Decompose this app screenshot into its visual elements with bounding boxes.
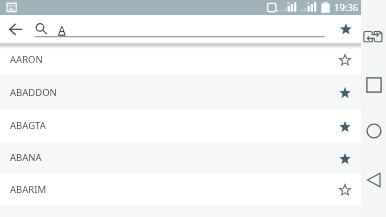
staticText: ABAGTA	[10, 119, 46, 132]
button[interactable]: Back	[361, 167, 386, 193]
button[interactable]: Home	[361, 118, 386, 144]
button[interactable]: ABAGTA	[0, 109, 361, 142]
button[interactable]: ABADDON	[0, 75, 361, 109]
button[interactable]: AARON	[0, 42, 361, 75]
button[interactable]: Favorites	[335, 18, 357, 40]
button[interactable]: ABARIM	[0, 173, 361, 205]
staticText: ABADDON	[10, 86, 57, 99]
staticText: AARON	[10, 53, 43, 66]
button[interactable]: ABANA	[0, 142, 361, 173]
staticText: A	[58, 22, 66, 38]
staticText: ABANA	[10, 151, 42, 164]
button[interactable]: Back	[4, 18, 26, 40]
staticText: ABARIM	[10, 183, 47, 196]
button[interactable]: Recents	[361, 72, 386, 98]
staticText: 19:36	[334, 1, 359, 14]
button[interactable]: Multi window	[361, 24, 386, 50]
